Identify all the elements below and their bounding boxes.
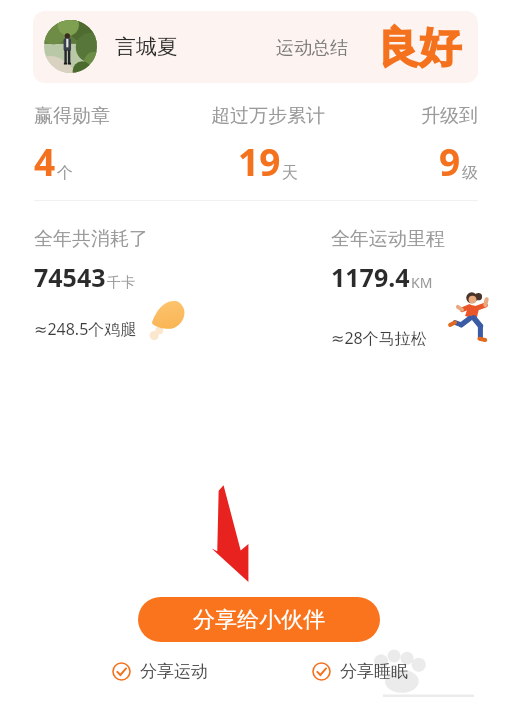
button[interactable]: 分享给小伙伴 — [138, 597, 380, 642]
staticText: 升级到 — [421, 104, 478, 128]
staticText: 千卡 — [107, 274, 135, 292]
staticText: 超过万步累计 — [211, 104, 325, 128]
staticText: 全年运动里程 — [331, 227, 445, 251]
staticText: 级 — [462, 163, 478, 183]
staticText: 19 — [238, 136, 281, 186]
staticText: 良好 — [377, 22, 461, 75]
staticText: 分享运动 — [140, 661, 208, 682]
staticText: 分享睡眠 — [340, 661, 408, 682]
staticText: 运动总结 — [276, 37, 348, 60]
staticText: 1179.4 — [331, 260, 410, 294]
staticText: 74543 — [34, 260, 106, 294]
staticText: 4 — [34, 136, 56, 186]
button[interactable]: 分享睡眠 — [310, 659, 410, 684]
staticText: ≈28个马拉松 — [331, 327, 427, 349]
staticText: 天 — [282, 163, 298, 183]
button[interactable]: 分享运动 — [110, 659, 210, 684]
staticText: 赢得勋章 — [34, 104, 110, 128]
staticText: 9 — [439, 136, 461, 186]
staticText: 全年共消耗了 — [34, 227, 148, 251]
staticText: KM — [411, 273, 433, 292]
staticText: 个 — [57, 163, 73, 183]
button[interactable]: 言城夏 — [33, 11, 478, 83]
staticText: ≈248.5个鸡腿 — [34, 318, 137, 340]
staticText: 分享给小伙伴 — [193, 606, 325, 634]
staticText: 言城夏 — [115, 34, 178, 60]
